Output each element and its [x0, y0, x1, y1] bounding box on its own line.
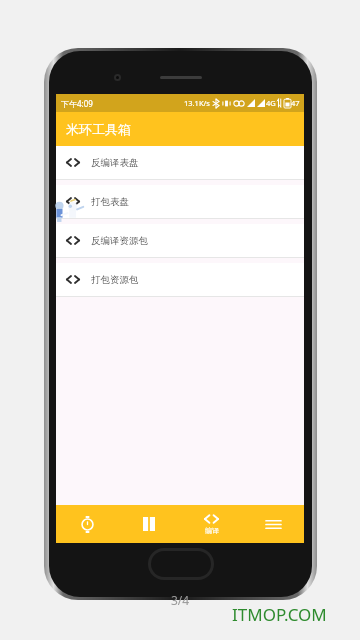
staticText: 编译 [205, 526, 219, 535]
staticText: 3/4 [0, 592, 360, 608]
button[interactable]: 反编译资源包 [56, 224, 304, 258]
staticText: 4G [266, 98, 276, 108]
staticText: 下午4:09 [61, 98, 93, 109]
staticText: 打包表盘 [91, 196, 129, 208]
staticText: 47 [291, 98, 300, 108]
button[interactable]: 打包表盘 [56, 185, 304, 219]
staticText: 反编译资源包 [91, 235, 148, 247]
button[interactable]: Menu [242, 505, 304, 543]
button[interactable]: 打包资源包 [56, 263, 304, 297]
staticText: 13.1K/s [184, 98, 210, 108]
staticText: ITMOP.COM [232, 603, 327, 626]
button[interactable]: Watch faces [56, 505, 118, 543]
button[interactable]: 反编译表盘 [56, 146, 304, 180]
staticText: 打包资源包 [91, 274, 139, 286]
staticText: 反编译表盘 [91, 157, 139, 169]
button[interactable]: Resources [118, 505, 180, 543]
staticText: 米环工具箱 [66, 121, 131, 137]
button[interactable]: 编译 [180, 505, 242, 543]
